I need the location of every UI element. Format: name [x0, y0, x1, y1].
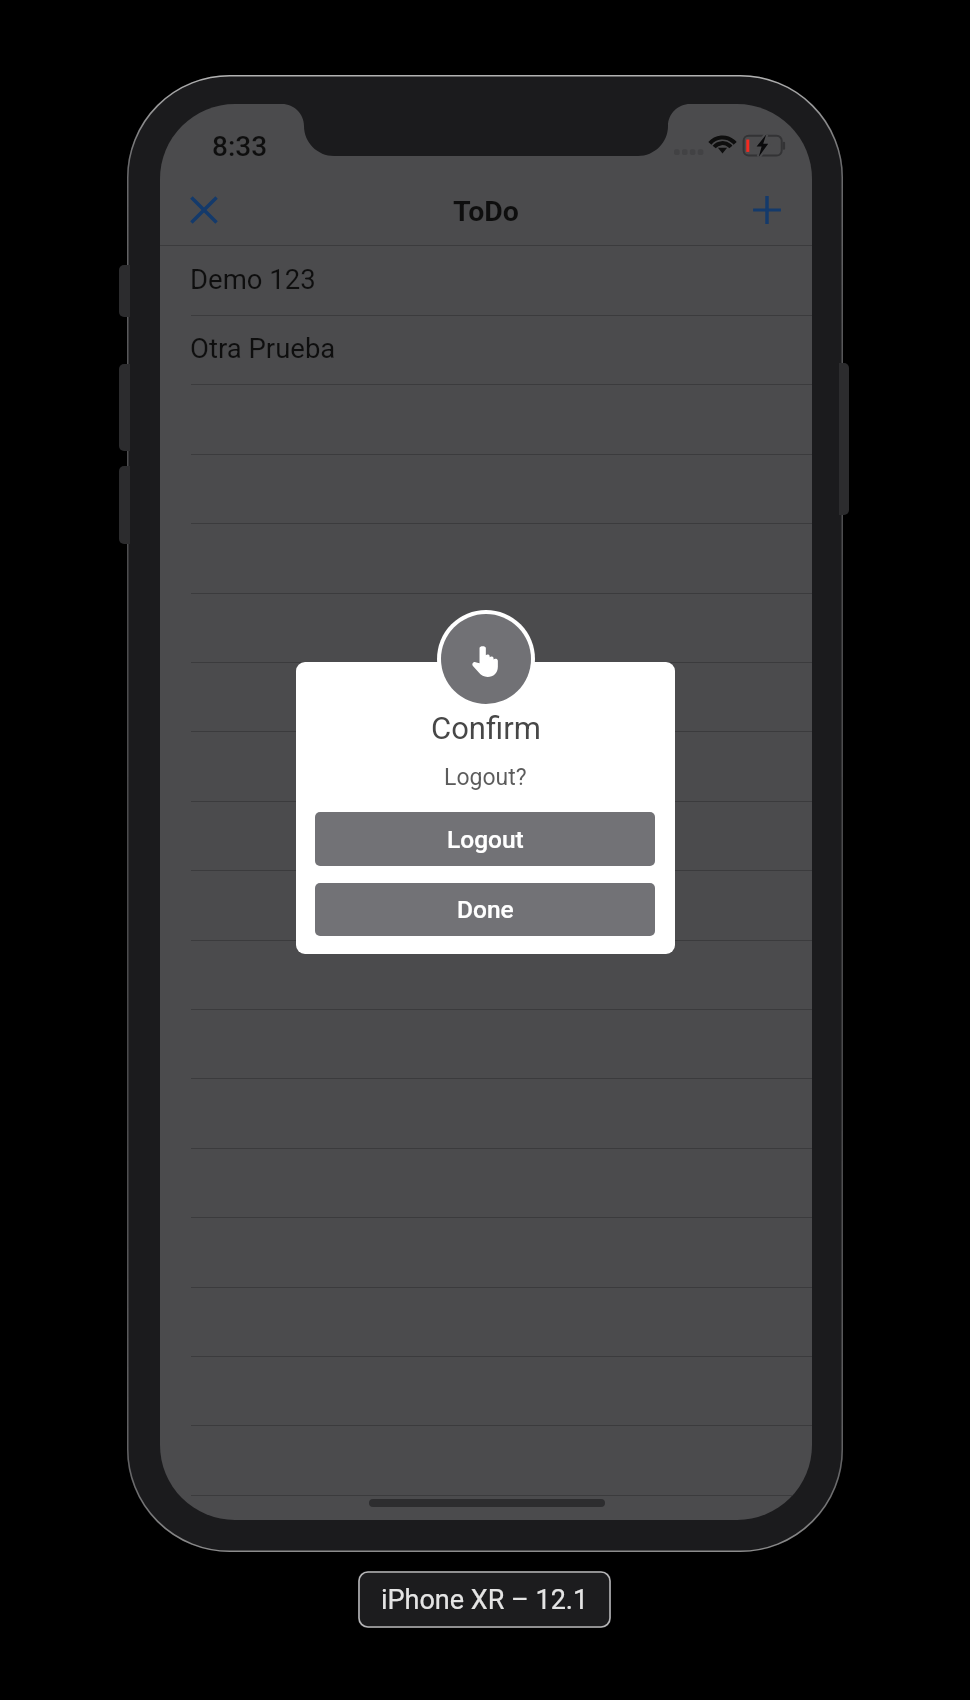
staticText: Done: [457, 895, 514, 924]
staticText: ToDo: [453, 195, 519, 228]
staticText: Logout: [447, 825, 524, 854]
button[interactable]: Add: [737, 180, 797, 240]
button[interactable]: [160, 1495, 812, 1520]
button[interactable]: [160, 1425, 812, 1494]
button[interactable]: Logout: [315, 812, 655, 866]
button[interactable]: iPhone XR – 12.1: [358, 1571, 611, 1628]
button[interactable]: Demo 123: [160, 246, 812, 315]
staticText: 8:33: [212, 130, 268, 163]
button[interactable]: [160, 801, 812, 870]
button[interactable]: [160, 870, 812, 939]
staticText: Logout?: [444, 764, 527, 791]
button[interactable]: Done: [315, 883, 655, 936]
button[interactable]: Otra Prueba: [160, 315, 812, 384]
staticText: Confirm: [431, 710, 541, 746]
button[interactable]: [160, 593, 812, 662]
button[interactable]: Close: [174, 180, 234, 240]
button[interactable]: [160, 940, 812, 1009]
button[interactable]: [160, 662, 812, 731]
staticText: Otra Prueba: [190, 332, 336, 364]
staticText: Demo 123: [190, 263, 316, 295]
staticText: iPhone XR – 12.1: [381, 1584, 589, 1616]
button[interactable]: [160, 731, 812, 800]
